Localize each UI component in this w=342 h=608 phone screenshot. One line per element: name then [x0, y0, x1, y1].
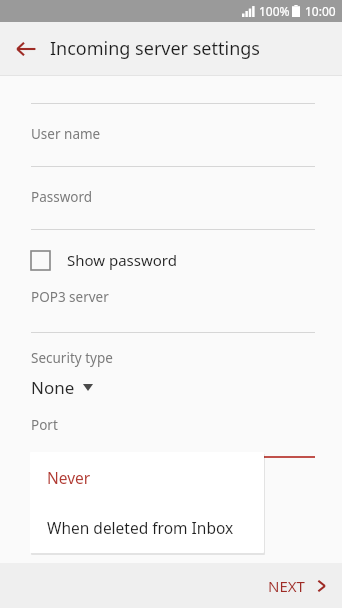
staticText: User name — [31, 125, 101, 143]
button[interactable]: None — [0, 374, 101, 401]
staticText: POP3 server — [31, 288, 109, 306]
button[interactable]: Never — [30, 452, 264, 502]
staticText: Password — [31, 188, 93, 206]
staticText: None — [31, 376, 75, 399]
staticText: 100% — [259, 3, 290, 19]
button[interactable]: Show password — [0, 246, 342, 274]
staticText: Incoming server settings — [50, 36, 260, 61]
staticText: When deleted from Inbox — [47, 517, 234, 538]
staticText: Never — [47, 467, 91, 488]
button[interactable]: Back — [8, 31, 44, 67]
button[interactable]: NEXT — [248, 566, 342, 606]
staticText: Show password — [67, 250, 177, 270]
staticText: Security type — [31, 349, 113, 367]
staticText: NEXT — [268, 576, 305, 596]
staticText: 10:00 — [305, 3, 336, 19]
staticText: Port — [31, 416, 58, 434]
button[interactable]: When deleted from Inbox — [30, 502, 264, 553]
